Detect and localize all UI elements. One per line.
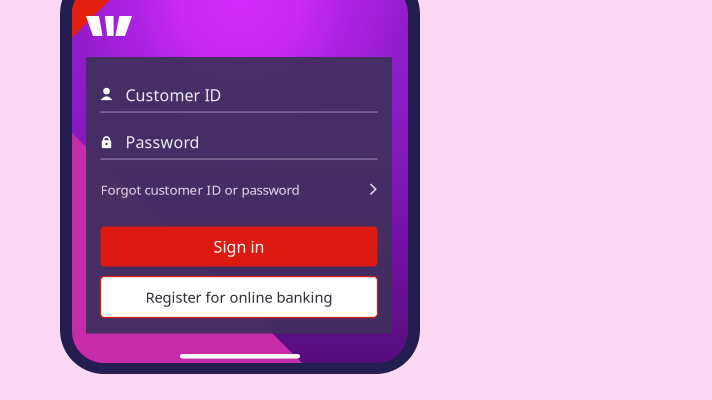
staticText: Forgot customer ID or password [100,181,299,198]
staticText: Register for online banking [145,287,332,307]
button[interactable]: Password [100,131,377,159]
staticText: Customer ID [125,84,221,106]
button[interactable]: Customer ID [100,84,377,112]
staticText: Password [125,131,199,153]
button[interactable]: Forgot customer ID or password [100,174,377,204]
button[interactable]: Home [174,348,306,364]
button[interactable]: Register for online banking [100,276,377,317]
button[interactable]: Sign in [100,226,377,266]
staticText: Sign in [213,236,264,257]
